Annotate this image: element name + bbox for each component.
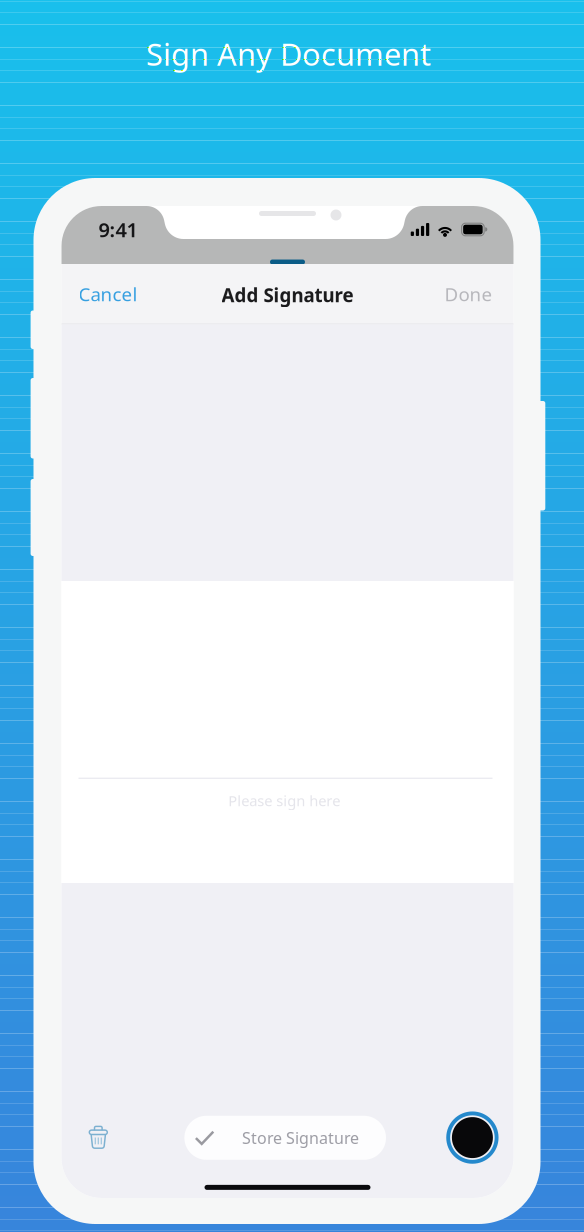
button[interactable]: Done [428, 265, 513, 323]
staticText: Please sign here [228, 791, 340, 810]
staticText: Store Signature [242, 1127, 359, 1148]
staticText: Add Signature [221, 283, 353, 307]
staticText: 9:41 [98, 216, 137, 243]
staticText: Done [444, 282, 492, 306]
button[interactable]: Store Signature [184, 1116, 386, 1160]
button[interactable]: Ink colour [448, 1113, 497, 1162]
staticText: Sign Any Document [146, 33, 431, 74]
button[interactable]: Cancel [61, 265, 152, 323]
staticText: Cancel [78, 282, 137, 306]
button[interactable]: Delete signature [73, 1112, 123, 1162]
